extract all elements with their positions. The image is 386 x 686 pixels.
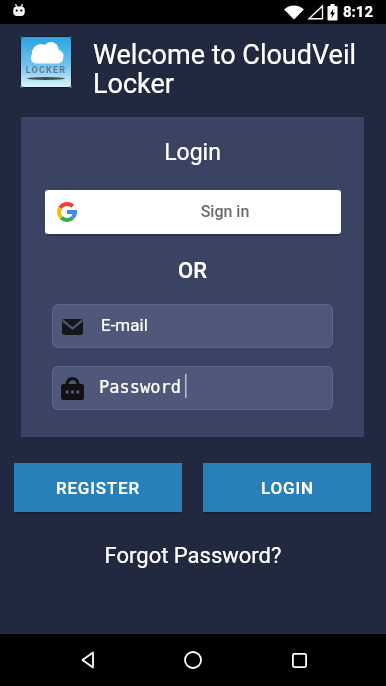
button[interactable] <box>281 642 317 678</box>
button[interactable] <box>175 642 211 678</box>
staticText: E-mail <box>101 315 148 335</box>
staticText: OR <box>21 258 364 284</box>
staticText: REGISTER <box>56 478 140 498</box>
button[interactable]: REGISTER <box>14 463 182 512</box>
staticText: Password <box>99 377 181 397</box>
staticText: 8:12 <box>343 3 374 21</box>
staticText: Sign in <box>77 202 341 221</box>
button[interactable]: Sign in <box>45 190 341 234</box>
staticText: LOCKER <box>20 65 72 76</box>
button[interactable]: Forgot Password? <box>0 543 386 569</box>
button[interactable]: E-mail <box>52 304 333 348</box>
staticText: Welcome to CloudVeil Locker <box>93 39 357 100</box>
button[interactable]: Password <box>52 366 333 410</box>
staticText: LOGIN <box>261 478 314 498</box>
button[interactable]: LOGIN <box>203 463 371 512</box>
staticText: Login <box>21 139 364 166</box>
button[interactable] <box>70 642 106 678</box>
